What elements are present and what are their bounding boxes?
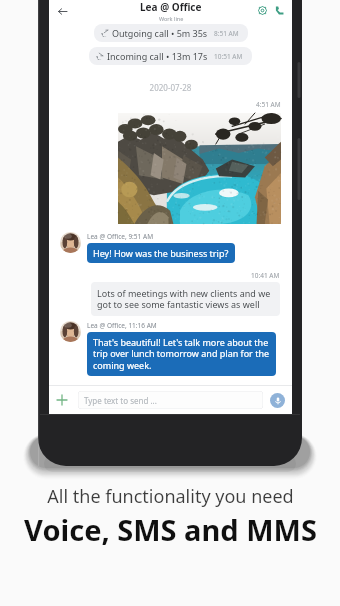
staticText: Lea @ Office (140, 0, 202, 14)
button[interactable]: Record voice message (270, 393, 285, 408)
button[interactable]: That's beautiful! Let's talk more about … (87, 332, 276, 376)
staticText: Type text to send ... (84, 395, 157, 406)
staticText: Work line (159, 15, 184, 21)
staticText: Voice, SMS and MMS (24, 510, 317, 549)
button[interactable]: Lots of meetings with new clients and we… (91, 282, 280, 316)
button[interactable]: Hey! How was the business trip? (87, 243, 235, 263)
staticText: 2020-07-28 (49, 82, 292, 93)
staticText: Lea @ Office, 9:51 AM (87, 232, 154, 241)
staticText: 10:51 AM (214, 52, 243, 61)
button[interactable]: Attach (54, 392, 70, 408)
staticText: All the functionality you need (47, 484, 294, 509)
staticText: 4:51 AM (256, 100, 281, 109)
button[interactable]: Incoming call • 13m 17s (89, 47, 252, 65)
button[interactable]: Back (54, 3, 70, 19)
staticText: Hey! How was the business trip? (93, 247, 229, 259)
staticText: Lots of meetings with new clients and we… (97, 287, 274, 311)
staticText: Outgoing call • 5m 35s (112, 27, 208, 39)
button[interactable]: Call (272, 3, 287, 18)
button[interactable]: Photo of coastal cove (118, 113, 281, 224)
staticText: Incoming call • 13m 17s (107, 50, 208, 62)
button[interactable]: Outgoing call • 5m 35s (94, 24, 248, 42)
staticText: 8:51 AM (214, 29, 239, 38)
staticText: That's beautiful! Let's talk more about … (93, 336, 270, 372)
staticText: Lea @ Office, 11:16 AM (87, 321, 157, 330)
button[interactable]: Settings (255, 3, 270, 18)
staticText: 10:41 AM (251, 271, 280, 280)
button[interactable]: Type text to send ... (78, 391, 263, 409)
